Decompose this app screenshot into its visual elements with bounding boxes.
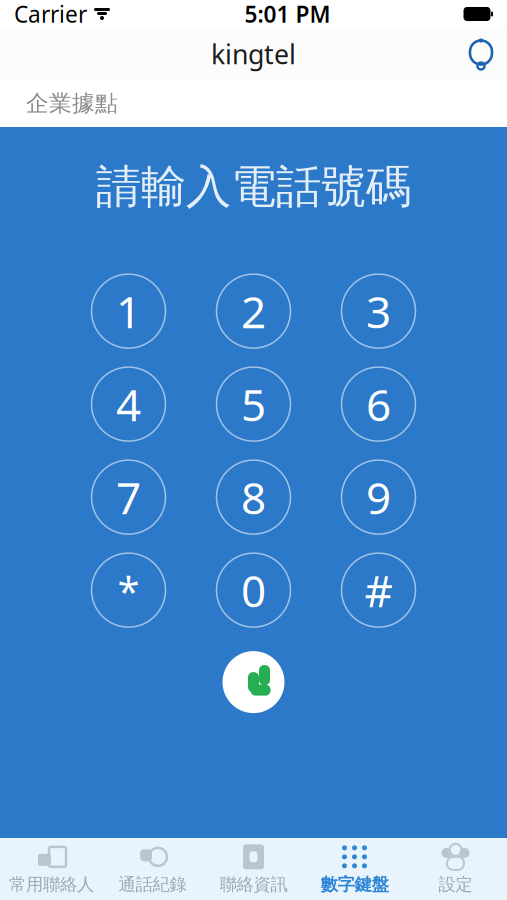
staticText: 5:01 PM — [244, 0, 330, 29]
staticText: 1 — [116, 282, 141, 340]
button[interactable]: 5 — [216, 367, 290, 441]
button[interactable]: 0 — [216, 553, 290, 627]
button[interactable]: 4 — [91, 367, 165, 441]
button[interactable]: 3 — [341, 274, 415, 348]
staticText: * — [117, 564, 139, 617]
button[interactable]: 1 — [91, 274, 165, 348]
staticText: 常用聯絡人 — [9, 874, 94, 895]
button[interactable]: * — [91, 553, 165, 627]
button[interactable]: 數字鍵盤 — [304, 838, 405, 900]
staticText: 7 — [116, 468, 141, 526]
staticText: 請輸入電話號碼 — [96, 159, 411, 215]
staticText: 9 — [366, 468, 391, 526]
staticText: # — [364, 561, 392, 619]
staticText: 3 — [366, 282, 391, 340]
staticText: 4 — [116, 375, 141, 433]
button[interactable]: 9 — [341, 460, 415, 534]
staticText: 2 — [241, 282, 266, 340]
button[interactable]: 8 — [216, 460, 290, 534]
staticText: 企業據點 — [26, 90, 118, 117]
staticText: 聯絡資訊 — [219, 874, 287, 895]
button[interactable]: 設定 — [405, 838, 506, 900]
button[interactable]: Call — [216, 645, 290, 719]
button[interactable]: 通話紀錄 — [102, 838, 203, 900]
button[interactable]: 常用聯絡人 — [1, 838, 102, 900]
button[interactable]: 7 — [91, 460, 165, 534]
staticText: 8 — [241, 468, 266, 526]
staticText: 數字鍵盤 — [320, 874, 388, 895]
staticText: 設定 — [438, 874, 472, 895]
staticText: 0 — [241, 561, 266, 619]
button[interactable]: 2 — [216, 274, 290, 348]
staticText: 6 — [366, 375, 391, 433]
button[interactable]: 聯絡資訊 — [203, 838, 304, 900]
staticText: kingtel — [211, 36, 296, 72]
staticText: Carrier — [14, 0, 87, 29]
button[interactable]: 6 — [341, 367, 415, 441]
button[interactable]: Notifications — [455, 28, 507, 80]
button[interactable]: # — [341, 553, 415, 627]
staticText: 通話紀錄 — [118, 874, 186, 895]
staticText: 5 — [241, 375, 266, 433]
